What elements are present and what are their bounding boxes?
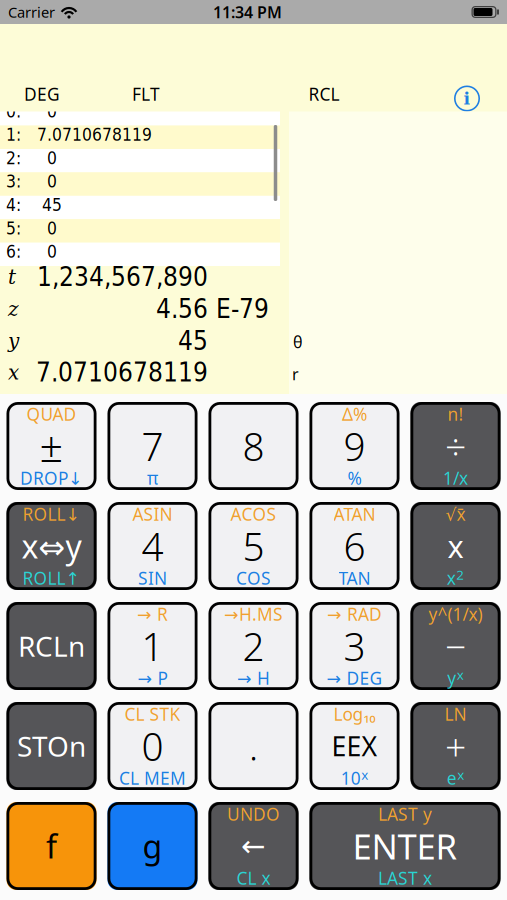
staticText: 2: [6, 148, 21, 168]
staticText: EEX [331, 728, 377, 764]
staticText: →H.MS [224, 602, 283, 625]
staticText: 0: [6, 101, 21, 121]
button[interactable]: →H.MS [208, 602, 298, 690]
staticText: FLT [132, 82, 160, 105]
staticText: → H [237, 666, 270, 689]
staticText: DEG [24, 82, 60, 105]
button[interactable] [107, 402, 197, 490]
staticText: x⇔y [21, 525, 81, 567]
staticText: f [46, 825, 57, 867]
staticText: ± [39, 419, 63, 473]
staticText: 10 [341, 766, 361, 789]
staticText: ENTER [352, 823, 457, 869]
button[interactable] [208, 702, 298, 790]
staticText: RCLn [18, 627, 85, 665]
staticText: DROP↓ [20, 466, 83, 489]
staticText: Log₁₀ [333, 702, 375, 725]
staticText: RCL [308, 82, 339, 105]
staticText: y [8, 329, 19, 353]
staticText: 45 [178, 326, 208, 356]
staticText: e [447, 766, 457, 789]
button[interactable]: → R [107, 602, 197, 690]
staticText: x [457, 766, 464, 783]
staticText: LAST x [378, 866, 432, 889]
staticText: 1 [141, 620, 163, 672]
staticText: n! [447, 402, 463, 425]
button[interactable] [6, 602, 96, 690]
button[interactable]: √x̄ [410, 502, 500, 590]
staticText: 5: [6, 218, 21, 238]
staticText: SIN [138, 566, 167, 589]
staticText: √x̄ [445, 502, 465, 525]
button[interactable] [6, 702, 96, 790]
button[interactable]: QUAD [6, 402, 96, 490]
staticText: θ [293, 331, 303, 353]
staticText: 5 [242, 520, 264, 572]
button[interactable]: i [454, 85, 480, 111]
staticText: ACOS [230, 502, 276, 525]
staticText: + [445, 721, 466, 771]
staticText: CL x [236, 866, 270, 889]
staticText: 3 [343, 620, 365, 672]
button[interactable] [208, 402, 298, 490]
staticText: 4 [141, 520, 163, 572]
button[interactable]: ASIN [107, 502, 197, 590]
staticText: Δ% [342, 402, 367, 425]
staticText: x [8, 361, 19, 384]
button[interactable] [107, 802, 197, 890]
staticText: UNDO [227, 802, 280, 825]
staticText: 2 [456, 566, 464, 583]
staticText: LAST y [378, 802, 432, 825]
staticText: 7.0710678119 [37, 125, 152, 145]
staticText: g [142, 825, 162, 867]
staticText: 1: [6, 125, 21, 145]
staticText: 2 [242, 620, 264, 672]
staticText: x [457, 666, 464, 683]
staticText: 4.56 [156, 294, 208, 324]
staticText: Carrier [8, 2, 55, 22]
staticText: → DEG [326, 666, 382, 689]
button[interactable]: CL STK [107, 702, 197, 790]
staticText: LN [444, 702, 466, 725]
button[interactable]: ROLL↓ [6, 502, 96, 590]
staticText: 45 [37, 195, 62, 215]
button[interactable]: → RAD [309, 602, 399, 690]
staticText: CL MEM [119, 766, 186, 789]
staticText: x [447, 526, 463, 566]
staticText: z [8, 297, 19, 321]
staticText: E-79 [216, 294, 269, 324]
button[interactable]: LAST y [309, 802, 500, 890]
staticText: → RAD [327, 602, 382, 625]
staticText: 11:34 PM [213, 1, 282, 23]
staticText: → P [137, 666, 167, 689]
button[interactable]: ACOS [208, 502, 298, 590]
button[interactable]: y^(1/x) [410, 602, 500, 690]
staticText: 6: [6, 242, 21, 262]
button[interactable]: Δ% [309, 402, 399, 490]
staticText: 0 [37, 148, 57, 168]
staticText: t [8, 265, 16, 289]
staticText: x [361, 766, 368, 783]
staticText: x [447, 566, 456, 589]
staticText: 1/x [443, 466, 468, 489]
staticText: ROLL↓ [22, 502, 80, 525]
button[interactable]: n! [410, 402, 500, 490]
button[interactable]: LN [410, 702, 500, 790]
staticText: % [347, 466, 361, 489]
button[interactable]: Log₁₀ [309, 702, 399, 790]
staticText: ATAN [333, 502, 375, 525]
staticText: y [447, 666, 456, 689]
staticText: . [249, 721, 258, 771]
staticText: ASIN [132, 502, 172, 525]
button[interactable]: UNDO [208, 802, 298, 890]
staticText: 0 [37, 218, 57, 238]
staticText: y^(1/x) [428, 602, 482, 625]
staticText: STOn [17, 727, 86, 765]
staticText: 0 [37, 171, 57, 192]
button[interactable] [6, 802, 96, 890]
button[interactable]: ATAN [309, 502, 399, 590]
staticText: ROLL↑ [22, 566, 80, 589]
staticText: i [463, 88, 470, 109]
staticText: r [292, 363, 299, 385]
staticText: ÷ [445, 421, 466, 471]
